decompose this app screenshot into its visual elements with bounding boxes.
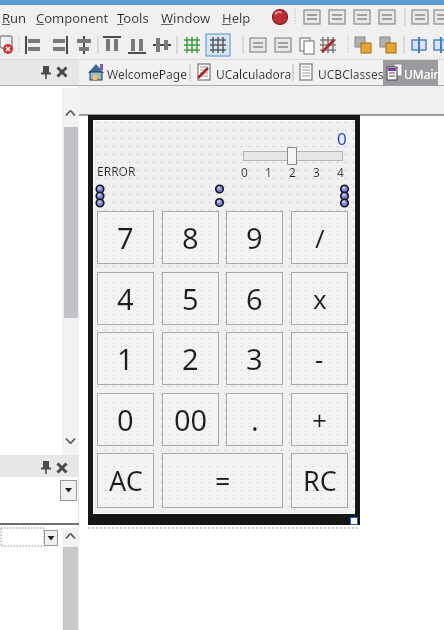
button[interactable] bbox=[44, 530, 58, 546]
button[interactable]: 1 bbox=[97, 332, 154, 385]
staticText: WelcomePage bbox=[107, 66, 187, 82]
button[interactable]: 2 bbox=[162, 332, 219, 385]
button[interactable]: 0 bbox=[97, 393, 154, 446]
button[interactable]: - bbox=[291, 332, 348, 385]
button[interactable]: x bbox=[291, 272, 348, 325]
button[interactable]: 5 bbox=[162, 272, 219, 325]
staticText: AC bbox=[109, 462, 143, 499]
button[interactable]: 9 bbox=[226, 211, 283, 264]
button[interactable] bbox=[287, 147, 297, 165]
staticText: ERROR bbox=[97, 163, 136, 179]
staticText: 1 bbox=[265, 164, 272, 180]
button[interactable] bbox=[60, 480, 77, 501]
staticText: Window bbox=[161, 9, 211, 27]
staticText: 00 bbox=[174, 400, 208, 439]
button[interactable]: . bbox=[226, 393, 283, 446]
button[interactable]: Run bbox=[2, 5, 34, 31]
staticText: = bbox=[215, 462, 231, 499]
button[interactable] bbox=[383, 60, 438, 86]
staticText: 0 bbox=[241, 164, 248, 180]
button[interactable]: = bbox=[162, 453, 283, 508]
staticText: 1 bbox=[117, 339, 134, 378]
button[interactable] bbox=[296, 60, 381, 86]
button[interactable]: 3 bbox=[226, 332, 283, 385]
button[interactable]: Window bbox=[161, 5, 217, 31]
staticText: 0 bbox=[117, 400, 134, 439]
button[interactable]: RC bbox=[291, 453, 348, 508]
staticText: - bbox=[315, 341, 324, 376]
button[interactable]: / bbox=[291, 211, 348, 264]
button[interactable]: 8 bbox=[162, 211, 219, 264]
button[interactable]: AC bbox=[97, 453, 154, 508]
staticText: 8 bbox=[182, 218, 199, 257]
button[interactable] bbox=[85, 60, 188, 86]
staticText: UMain bbox=[404, 66, 441, 82]
button[interactable]: 4 bbox=[97, 272, 154, 325]
staticText: Help bbox=[222, 9, 251, 27]
staticText: 4 bbox=[337, 164, 344, 180]
staticText: 4 bbox=[117, 279, 134, 318]
button[interactable]: 6 bbox=[226, 272, 283, 325]
button[interactable]: Component bbox=[36, 5, 116, 31]
staticText: 3 bbox=[246, 339, 263, 378]
button[interactable]: 7 bbox=[97, 211, 154, 264]
button[interactable]: + bbox=[291, 393, 348, 446]
staticText: Tools bbox=[117, 9, 149, 27]
staticText: Run bbox=[2, 9, 27, 27]
staticText: 2 bbox=[289, 164, 296, 180]
staticText: 5 bbox=[182, 279, 199, 318]
staticText: UCBClasses bbox=[318, 66, 384, 82]
staticText: + bbox=[312, 402, 327, 437]
button[interactable]: 00 bbox=[162, 393, 219, 446]
staticText: 9 bbox=[246, 218, 263, 257]
staticText: 6 bbox=[246, 279, 263, 318]
staticText: Component bbox=[36, 9, 109, 27]
button[interactable] bbox=[194, 60, 291, 86]
staticText: 3 bbox=[313, 164, 320, 180]
staticText: . bbox=[251, 400, 259, 439]
button[interactable]: Tools bbox=[117, 5, 165, 31]
staticText: 2 bbox=[182, 339, 199, 378]
staticText: x bbox=[313, 281, 327, 316]
staticText: 0 bbox=[337, 127, 347, 150]
staticText: / bbox=[315, 220, 325, 255]
staticText: UCalculadora bbox=[216, 66, 292, 82]
staticText: RC bbox=[303, 462, 337, 499]
button[interactable]: Help bbox=[222, 5, 262, 31]
staticText: 7 bbox=[117, 218, 134, 257]
